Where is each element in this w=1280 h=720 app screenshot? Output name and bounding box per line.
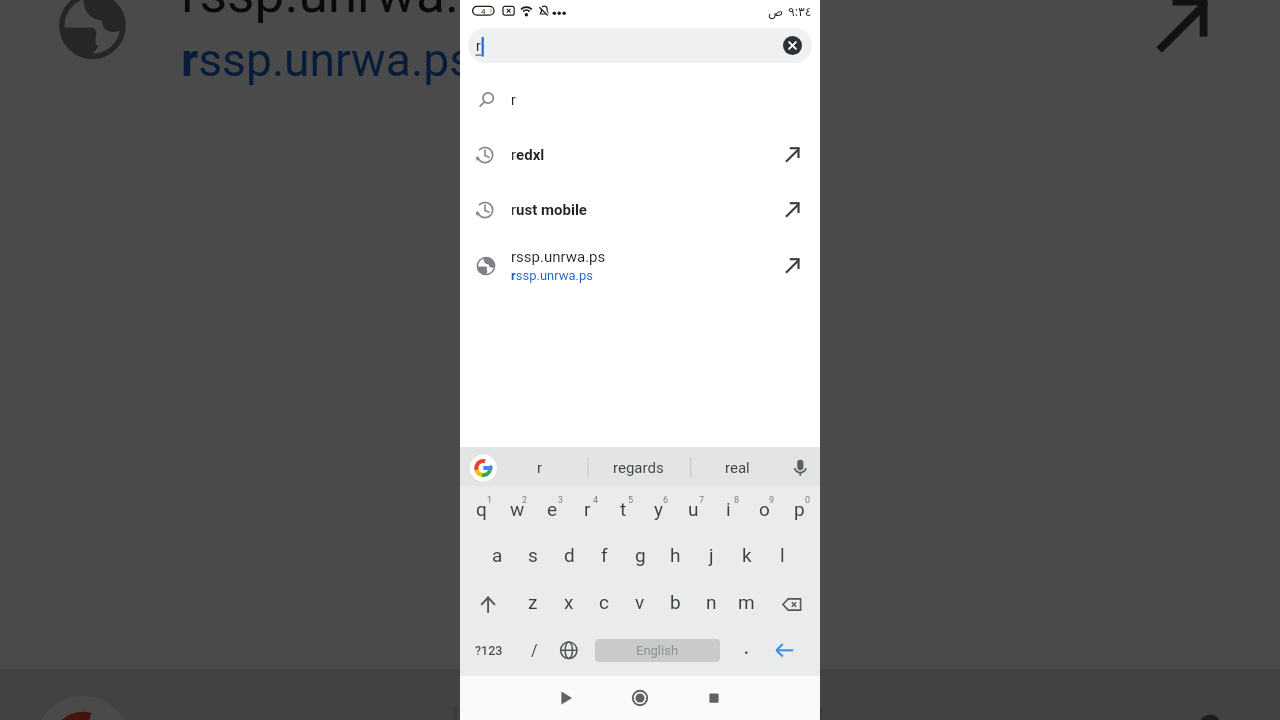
- button[interactable]: regards: [460, 447, 541, 471]
- button[interactable]: r: [570, 486, 604, 532]
- button[interactable]: rssp.unrwa.ps: [0, 0, 1280, 118]
- button[interactable]: ?123: [460, 0, 498, 24]
- staticText: w: [510, 498, 525, 520]
- button[interactable]: r: [460, 447, 540, 471]
- button[interactable]: z: [516, 579, 550, 625]
- staticText: /: [531, 641, 538, 660]
- staticText: 6: [663, 495, 669, 506]
- button[interactable]: real: [0, 669, 284, 720]
- button[interactable]: n: [694, 579, 728, 625]
- button[interactable]: /: [460, 0, 484, 24]
- staticText: 9: [769, 495, 775, 506]
- staticText: e: [547, 498, 558, 520]
- button[interactable]: u: [676, 486, 710, 532]
- staticText: r: [511, 92, 516, 108]
- staticText: a: [492, 544, 503, 566]
- staticText: v: [635, 591, 645, 613]
- staticText: English: [636, 643, 679, 658]
- staticText: rssp.unrwa.ps: [511, 268, 594, 283]
- button[interactable]: r: [460, 74, 820, 126]
- button[interactable]: a: [480, 532, 514, 578]
- button[interactable]: [770, 582, 812, 627]
- button[interactable]: p: [782, 486, 816, 532]
- button[interactable]: redxl: [460, 129, 820, 181]
- button[interactable]: t: [606, 486, 640, 532]
- staticText: c: [599, 591, 609, 613]
- staticText: real: [725, 459, 750, 477]
- button[interactable]: .: [460, 0, 484, 24]
- button[interactable]: g: [623, 532, 657, 578]
- staticText: u: [688, 498, 699, 520]
- staticText: 7: [699, 495, 705, 506]
- staticText: 1: [487, 495, 493, 506]
- staticText: redxl: [511, 146, 545, 164]
- button[interactable]: k: [730, 532, 764, 578]
- button[interactable]: i: [711, 486, 745, 532]
- button[interactable]: [620, 678, 660, 718]
- button[interactable]: v: [623, 579, 657, 625]
- button[interactable]: [468, 582, 510, 627]
- button[interactable]: w: [500, 486, 534, 532]
- button[interactable]: l: [765, 532, 799, 578]
- button[interactable]: j: [694, 532, 728, 578]
- staticText: 8: [734, 495, 740, 506]
- button[interactable]: o: [747, 486, 781, 532]
- button[interactable]: d: [552, 532, 586, 578]
- staticText: s: [528, 544, 538, 566]
- staticText: o: [759, 498, 770, 520]
- staticText: 4: [593, 495, 599, 506]
- staticText: h: [670, 544, 681, 566]
- button[interactable]: [546, 678, 586, 718]
- button[interactable]: h: [658, 532, 692, 578]
- staticText: rssp.unrwa.ps: [511, 248, 606, 266]
- staticText: ص: [768, 4, 784, 19]
- button[interactable]: f: [587, 532, 621, 578]
- staticText: q: [476, 498, 487, 520]
- staticText: f: [601, 544, 608, 566]
- staticText: ?123: [475, 643, 503, 658]
- button[interactable]: c: [587, 579, 621, 625]
- staticText: r: [584, 498, 591, 520]
- staticText: n: [706, 591, 717, 613]
- button[interactable]: x: [552, 579, 586, 625]
- staticText: m: [738, 591, 755, 613]
- staticText: 0: [805, 495, 811, 506]
- button[interactable]: [783, 36, 802, 55]
- staticText: j: [709, 544, 714, 566]
- button[interactable]: rssp.unrwa.ps: [460, 240, 820, 292]
- button[interactable]: [694, 678, 734, 718]
- staticText: i: [726, 498, 731, 520]
- staticText: t: [620, 498, 627, 520]
- staticText: .: [744, 639, 749, 658]
- button[interactable]: m: [729, 579, 763, 625]
- staticText: y: [654, 498, 663, 520]
- staticText: p: [794, 498, 805, 520]
- staticText: rust mobile: [511, 201, 587, 219]
- staticText: d: [564, 544, 575, 566]
- staticText: r: [537, 459, 543, 477]
- button[interactable]: r: [0, 669, 284, 720]
- staticText: 4: [481, 7, 486, 16]
- staticText: k: [742, 544, 752, 566]
- button[interactable]: English: [595, 639, 720, 662]
- staticText: l: [780, 544, 785, 566]
- staticText: 2: [522, 495, 528, 506]
- button[interactable]: b: [658, 579, 692, 625]
- button[interactable]: regards: [0, 669, 288, 720]
- button[interactable]: r: [468, 28, 812, 63]
- staticText: 5: [628, 495, 634, 506]
- staticText: regards: [613, 459, 664, 477]
- staticText: z: [528, 591, 538, 613]
- staticText: r: [476, 38, 481, 54]
- button[interactable]: q: [464, 486, 498, 532]
- staticText: ٩:٣٤: [788, 3, 812, 20]
- button[interactable]: y: [641, 486, 675, 532]
- button[interactable]: e: [535, 486, 569, 532]
- button[interactable]: real: [460, 447, 540, 471]
- button[interactable]: s: [516, 532, 550, 578]
- staticText: rssp.unrwa.ps: [181, 33, 476, 86]
- button[interactable]: rust mobile: [460, 184, 820, 236]
